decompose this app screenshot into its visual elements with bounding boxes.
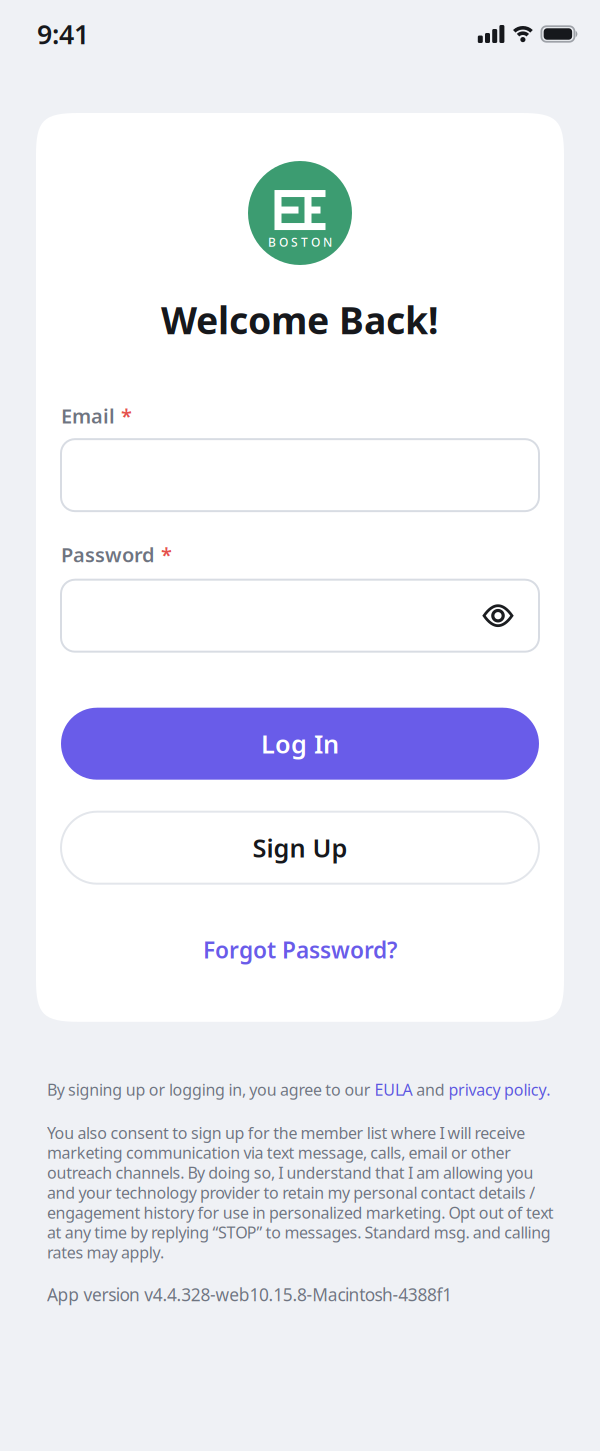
staticText: Log In <box>261 727 339 760</box>
button[interactable]: Log In <box>61 708 539 780</box>
staticText: * <box>121 403 132 429</box>
staticText: EULA <box>374 1079 413 1100</box>
staticText: B O S T O N <box>268 234 332 250</box>
staticText: Sign Up <box>252 831 347 864</box>
staticText: * <box>161 541 172 568</box>
staticText: App version v4.4.328-web10.15.8-Macintos… <box>47 1283 452 1306</box>
staticText: You also consent to sign up for the memb… <box>47 1122 554 1263</box>
staticText: Welcome Back! <box>161 295 439 345</box>
staticText: 9:41 <box>37 16 89 52</box>
button[interactable]: Forgot Password? <box>203 935 397 965</box>
staticText: privacy policy. <box>448 1079 550 1100</box>
staticText: Forgot Password? <box>203 935 397 965</box>
staticText: By signing up or logging in, you agree t… <box>47 1079 374 1100</box>
button[interactable]: EULA <box>374 1079 413 1100</box>
staticText: and <box>413 1079 448 1100</box>
staticText: Email <box>61 403 115 429</box>
button[interactable]: Show password <box>483 605 513 627</box>
staticText: Password <box>61 541 155 568</box>
button[interactable]: privacy policy. <box>448 1079 550 1100</box>
button[interactable]: Sign Up <box>61 812 539 884</box>
